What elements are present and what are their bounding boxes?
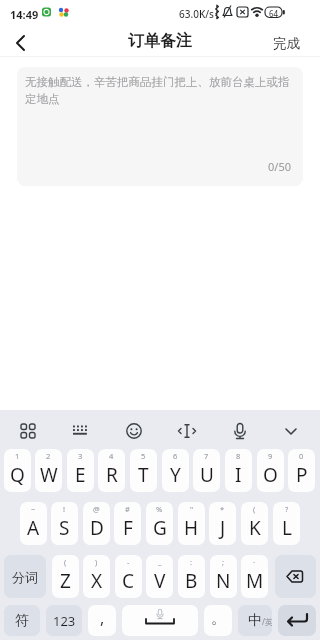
button[interactable]: 符 [4,605,40,636]
button[interactable]: # [114,502,141,545]
button[interactable]: 中 [238,605,272,636]
staticText: 中 [248,612,262,630]
staticText: 64 [269,8,279,19]
button[interactable] [6,30,40,56]
staticText: 完成 [273,35,300,52]
staticText: ~ [31,504,36,514]
staticText: P [296,462,308,488]
button[interactable]: 7 [193,449,220,492]
button[interactable] [7,411,49,449]
button[interactable]: ? [273,502,300,545]
staticText: " [190,504,194,514]
staticText: F [123,515,133,541]
staticText: 3 [78,451,83,461]
staticText: N [216,568,231,594]
staticText: C [122,568,135,594]
button[interactable]: 。 [204,605,232,636]
button[interactable]: * [209,502,236,545]
staticText: ( [64,557,67,567]
button[interactable]: 1 [4,449,31,492]
staticText: W [40,462,58,488]
button[interactable]: 0 [288,449,315,492]
staticText: 123 [53,612,76,630]
staticText: 0/50 [268,159,291,174]
staticText: V [154,568,166,594]
staticText: ) [95,557,98,567]
button[interactable]: 无接触配送，辛苦把商品挂门把上、放前台桌上或指定地点 [17,67,303,186]
button[interactable]: 123 [46,605,82,636]
staticText: @ [93,504,100,514]
staticText: 63.0K/s [179,7,214,21]
staticText: M [246,568,264,594]
button[interactable] [59,411,101,449]
staticText: Y [170,462,181,488]
staticText: : [190,557,193,567]
button[interactable] [166,411,208,449]
staticText: , [100,607,105,629]
button[interactable]: ~ [20,502,47,545]
staticText: J [220,515,226,541]
button[interactable] [113,411,155,449]
button[interactable]: 2 [35,449,62,492]
button[interactable]: 9 [257,449,284,492]
staticText: 。 [211,609,226,628]
button[interactable]: - [115,555,142,598]
button[interactable] [278,605,316,636]
staticText: 7 [204,451,209,461]
button[interactable]: 5 [130,449,157,492]
button[interactable] [270,411,312,449]
staticText: ( [253,504,256,514]
staticText: 5 [141,451,146,461]
staticText: E [75,462,86,488]
staticText: G [153,515,167,541]
staticText: 分词 [12,569,38,585]
staticText: 0 [299,451,304,461]
button[interactable]: ) [83,555,110,598]
staticText: L [282,515,292,541]
button[interactable]: ; [210,555,237,598]
staticText: U [200,462,214,488]
button[interactable]: @ [83,502,110,545]
staticText: Z [60,568,71,594]
button[interactable]: : [178,555,205,598]
button[interactable] [122,605,198,636]
staticText: ! [63,504,66,514]
staticText: 2 [46,451,51,461]
staticText: ; [222,557,225,567]
button[interactable]: , [88,605,116,636]
staticText: O [263,462,278,488]
button[interactable] [275,555,316,598]
staticText: R [106,462,118,488]
staticText: T [138,462,149,488]
button[interactable]: " [178,502,205,545]
staticText: 1 [15,451,20,461]
button[interactable]: 4 [98,449,125,492]
button[interactable]: ( [241,502,268,545]
staticText: Q [10,462,25,488]
button[interactable]: % [146,502,173,545]
staticText: # [125,504,130,514]
button[interactable]: 8 [225,449,252,492]
staticText: I [235,462,242,488]
button[interactable]: 6 [162,449,189,492]
staticText: * [220,504,225,514]
staticText: 6 [173,451,178,461]
staticText: /英 [262,616,272,627]
staticText: 4 [109,451,114,461]
button[interactable]: ! [51,502,78,545]
staticText: % [156,504,163,514]
button[interactable]: 分词 [4,555,46,598]
button[interactable]: 3 [67,449,94,492]
staticText: 无接触配送，辛苦把商品挂门把上、放前台桌上或指定地点 [25,75,291,106]
button[interactable]: _ [146,555,173,598]
staticText: D [90,515,104,541]
staticText: 8 [236,451,241,461]
staticText: B [185,568,198,594]
button[interactable]: 完成 [262,30,310,56]
staticText: H [184,515,199,541]
staticText: K [249,515,261,541]
button[interactable]: ( [52,555,79,598]
staticText: - [127,557,130,567]
button[interactable] [219,411,261,449]
button[interactable]: · [241,555,268,598]
